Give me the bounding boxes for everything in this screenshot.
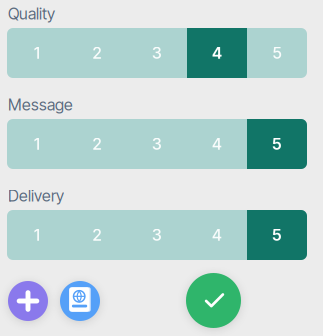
button[interactable]: Rate 5 (247, 28, 307, 78)
staticText: 5 (272, 225, 282, 245)
button[interactable]: Rate 4 (187, 28, 247, 78)
staticText: 4 (212, 134, 222, 154)
staticText: 3 (152, 134, 162, 154)
staticText: 1 (34, 43, 40, 63)
staticText: 1 (34, 134, 40, 154)
button[interactable]: Rate 2 (67, 119, 127, 169)
staticText: 2 (92, 43, 101, 63)
staticText: 2 (92, 225, 101, 245)
button[interactable]: Add (8, 281, 48, 321)
button[interactable]: Confirm (186, 273, 241, 328)
button[interactable]: Rate 5 (247, 210, 307, 260)
staticText: 5 (272, 134, 282, 154)
staticText: 3 (152, 225, 162, 245)
button[interactable]: Rate 1 (7, 210, 67, 260)
staticText: 4 (212, 225, 222, 245)
staticText: Delivery (8, 186, 64, 205)
staticText: Quality (8, 4, 55, 23)
button[interactable]: Rate 2 (67, 28, 127, 78)
staticText: Message (8, 95, 73, 114)
button[interactable]: Rate 4 (187, 210, 247, 260)
button[interactable]: Rate 3 (127, 119, 187, 169)
staticText: 5 (272, 43, 281, 63)
button[interactable]: Translate (60, 281, 100, 321)
staticText: 1 (34, 225, 40, 245)
staticText: 2 (92, 134, 101, 154)
button[interactable]: Rate 1 (7, 28, 67, 78)
button[interactable]: Rate 4 (187, 119, 247, 169)
button[interactable]: Rate 3 (127, 28, 187, 78)
button[interactable]: Rate 3 (127, 210, 187, 260)
staticText: 3 (152, 43, 162, 63)
button[interactable]: Rate 5 (247, 119, 307, 169)
button[interactable]: Rate 2 (67, 210, 127, 260)
staticText: 4 (212, 43, 222, 63)
button[interactable]: Rate 1 (7, 119, 67, 169)
